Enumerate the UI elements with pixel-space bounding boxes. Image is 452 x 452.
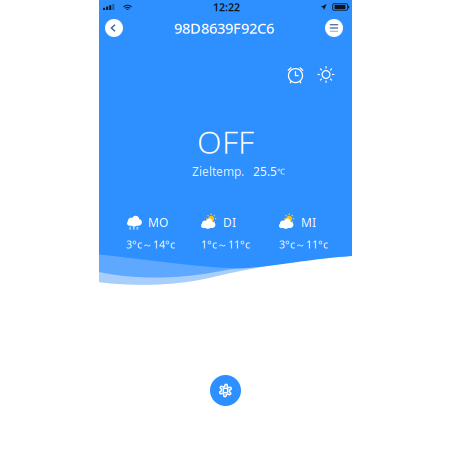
staticText: 12:22 (213, 0, 240, 14)
staticText: DI (223, 214, 236, 230)
staticText: MI (301, 214, 316, 230)
button[interactable]: Back (105, 19, 123, 37)
staticText: OFF (197, 120, 254, 162)
button[interactable]: Timer (287, 66, 304, 83)
button[interactable]: Menu (325, 19, 343, 37)
staticText: 25.5 (253, 163, 277, 179)
staticText: 1°c～11°c (201, 237, 250, 251)
staticText: MO (148, 214, 168, 230)
staticText: ℃ (277, 166, 285, 177)
button[interactable]: Settings (210, 375, 241, 406)
staticText: 3°c～14°c (126, 237, 175, 251)
staticText: 98D8639F92C6 (174, 18, 274, 38)
button[interactable]: Brightness (317, 66, 335, 83)
staticText: Zieltemp. (192, 163, 244, 179)
staticText: 3°c～11°c (279, 237, 328, 251)
